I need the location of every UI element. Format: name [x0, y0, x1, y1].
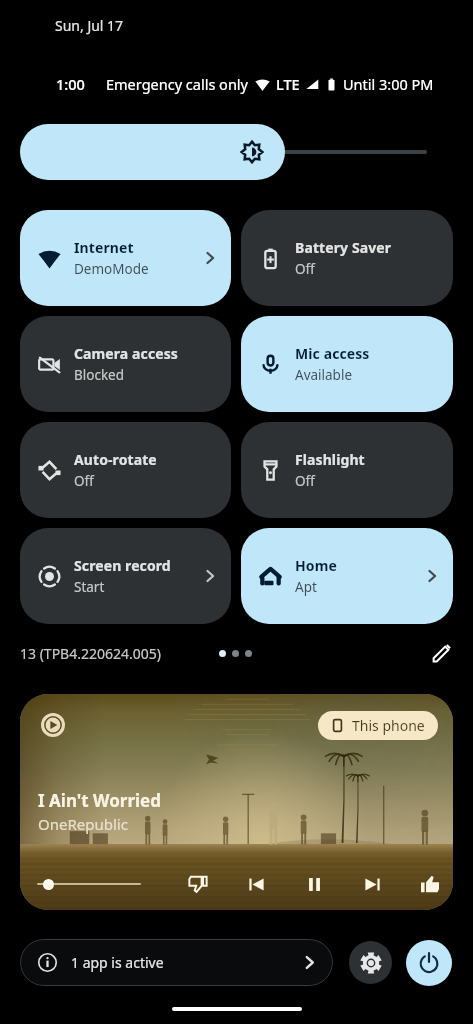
button[interactable]: Battery Saver [241, 210, 453, 306]
button[interactable]: Settings [349, 941, 392, 984]
button[interactable]: Camera access [20, 316, 231, 412]
staticText: Start [74, 578, 105, 596]
button[interactable]: Thumb down [184, 870, 212, 898]
button[interactable]: Power [406, 940, 452, 986]
button[interactable]: Next [358, 870, 386, 898]
staticText: Flashlight [295, 450, 365, 469]
button[interactable]: Flashlight [241, 422, 453, 518]
staticText: Emergency calls only [106, 74, 248, 94]
staticText: DemoMode [74, 260, 149, 278]
staticText: Camera access [74, 344, 178, 363]
staticText: Internet [74, 238, 134, 257]
button[interactable]: Auto-rotate [20, 422, 231, 518]
staticText: I Ain't Worried [38, 789, 161, 812]
button[interactable]: Thumb up [416, 870, 444, 898]
button[interactable]: App icon [20, 694, 453, 910]
staticText: Mic access [295, 344, 370, 363]
staticText: Off [295, 260, 315, 278]
staticText: 1:00 [56, 74, 85, 94]
button[interactable]: Pause [300, 870, 328, 898]
button[interactable]: Previous [242, 870, 270, 898]
button[interactable]: This phone [318, 711, 438, 740]
staticText: 13 (TPB4.220624.005) [20, 644, 161, 663]
staticText: Available [295, 366, 352, 384]
button[interactable]: Home [241, 528, 453, 624]
staticText: Battery Saver [295, 238, 392, 257]
button[interactable]: Internet [20, 210, 231, 306]
staticText: Until 3:00 PM [343, 74, 434, 94]
staticText: This phone [352, 716, 425, 735]
staticText: Sun, Jul 17 [55, 16, 124, 35]
button[interactable]: 1 app is active [20, 939, 333, 986]
button[interactable]: Mic access [241, 316, 453, 412]
staticText: Home [295, 556, 337, 575]
staticText: Apt [295, 578, 317, 596]
staticText: Off [74, 472, 94, 490]
button[interactable]: App icon [41, 713, 65, 737]
staticText: OneRepublic [38, 814, 128, 834]
staticText: LTE [276, 74, 300, 94]
staticText: 1 app is active [71, 953, 164, 972]
staticText: Screen record [74, 556, 171, 575]
staticText: Blocked [74, 366, 125, 384]
button[interactable]: Edit [427, 638, 457, 668]
button[interactable] [20, 124, 285, 180]
staticText: Off [295, 472, 315, 490]
staticText: Auto-rotate [74, 450, 157, 469]
button[interactable]: Screen record [20, 528, 231, 624]
